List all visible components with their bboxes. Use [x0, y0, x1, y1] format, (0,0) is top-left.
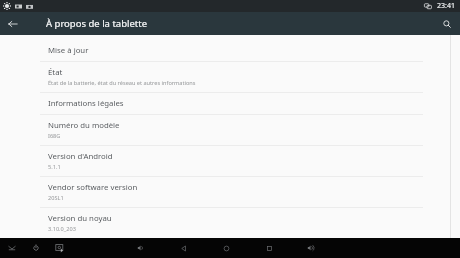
button[interactable]: Back [5, 16, 21, 32]
button[interactable]: Version du noyau [18, 208, 423, 238]
staticText: Numéro du modèle [48, 120, 120, 131]
button[interactable]: Volume down [130, 238, 152, 258]
button[interactable]: Search [439, 16, 455, 32]
button[interactable]: Informations légales [18, 93, 423, 114]
button[interactable]: Home [215, 238, 237, 258]
button[interactable]: Numéro du modèle [18, 115, 423, 145]
staticText: Informations légales [48, 98, 124, 109]
button[interactable]: Mise à jour [18, 40, 423, 61]
staticText: 20SL1 [48, 194, 64, 202]
staticText: 5.1.1 [48, 163, 61, 171]
staticText: 23:41 [437, 1, 455, 11]
staticText: Version du noyau [48, 213, 112, 224]
button[interactable]: Power [24, 238, 48, 258]
staticText: 3.10.0_203 [48, 225, 76, 233]
staticText: État de la batterie, état du réseau et a… [48, 79, 196, 87]
staticText: Version d'Android [48, 151, 113, 162]
staticText: À propos de la tablette [46, 17, 148, 30]
button[interactable]: Version d'Android [18, 146, 423, 176]
button[interactable]: État [18, 62, 423, 92]
button[interactable]: Hide navigation bar [0, 238, 24, 258]
button[interactable]: Back [172, 238, 194, 258]
button[interactable]: Recent apps [258, 238, 280, 258]
staticText: Vendor software version [48, 182, 138, 193]
button[interactable]: Volume up [300, 238, 322, 258]
staticText: Mise à jour [48, 45, 89, 56]
button[interactable]: Screenshot [48, 238, 72, 258]
staticText: I68G [48, 132, 61, 140]
button[interactable]: Vendor software version [18, 177, 423, 207]
staticText: État [48, 67, 63, 78]
